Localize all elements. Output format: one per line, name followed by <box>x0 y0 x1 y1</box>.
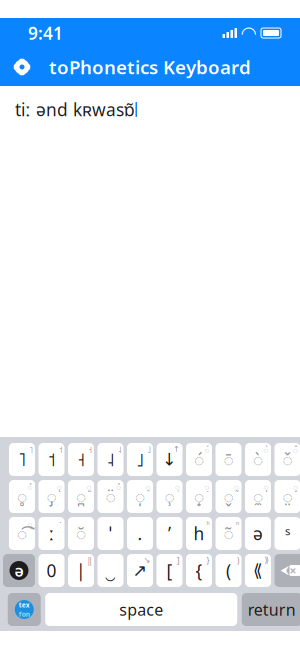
staticText: ˑ <box>59 518 62 529</box>
staticText: ◌́ <box>194 448 204 471</box>
staticText: ̽ <box>116 481 121 492</box>
button[interactable]: { <box>186 554 212 587</box>
button[interactable]: Next keyboard <box>8 593 41 626</box>
staticText: ˩ <box>136 448 143 471</box>
staticText: ◌̄ <box>223 448 233 471</box>
button[interactable]: 0 <box>38 554 64 587</box>
staticText: ˧ <box>77 448 84 471</box>
staticText: ʼ <box>168 522 171 545</box>
staticText: ̺ <box>86 481 91 492</box>
staticText: ˢ <box>285 522 290 545</box>
staticText: ◌̃ <box>223 522 233 545</box>
button[interactable]: Delete <box>274 554 300 587</box>
button[interactable]: Diacritic <box>97 480 123 513</box>
staticText: ◌̥ <box>17 485 27 508</box>
staticText: ̜ <box>175 481 180 492</box>
staticText: ː <box>48 522 54 545</box>
staticText: ◌̼ <box>253 485 263 508</box>
button[interactable]: . <box>127 517 153 550</box>
staticText: ↘ <box>143 555 150 565</box>
button[interactable]: Diacritic <box>68 480 94 513</box>
button[interactable]: Diacritic <box>38 480 64 513</box>
button[interactable]: ˈ <box>97 517 123 550</box>
button[interactable]: Diacritic <box>127 480 153 513</box>
button[interactable]: h <box>186 517 212 550</box>
button[interactable]: ↗ <box>127 554 153 587</box>
button[interactable]: Settings <box>0 48 44 86</box>
button[interactable]: Diacritic <box>245 480 271 513</box>
staticText: ˥ <box>29 444 32 455</box>
staticText: tiː ənd kʀwasɒ̃ <box>15 98 135 121</box>
button[interactable]: ə <box>245 517 271 550</box>
button[interactable]: Diacritic <box>245 443 271 476</box>
button[interactable]: Diacritic <box>215 480 241 513</box>
button[interactable]: ˦ <box>38 443 64 476</box>
staticText: ̀ <box>263 444 268 455</box>
staticText: space <box>119 599 163 620</box>
button[interactable]: ˢ <box>274 517 300 550</box>
staticText: { <box>195 559 202 582</box>
button[interactable]: ˨ <box>97 443 123 476</box>
staticText: fon <box>19 610 30 619</box>
staticText: ↑ <box>173 444 180 454</box>
staticText: ◌̆ <box>76 522 86 545</box>
staticText: ) <box>237 555 239 566</box>
button[interactable]: Diacritic <box>156 480 182 513</box>
button[interactable]: Diacritic <box>9 517 35 550</box>
staticText: ↓ <box>162 450 177 469</box>
button[interactable]: | <box>68 554 94 587</box>
button[interactable]: Diacritic <box>274 480 300 513</box>
staticText: ˦ <box>59 444 62 455</box>
staticText: ◌̡ <box>46 485 56 508</box>
button[interactable]: Shift <box>3 554 35 587</box>
button[interactable]: ↓ <box>156 443 182 476</box>
staticText: ◌̟ <box>194 485 204 508</box>
staticText: ̂ <box>293 444 298 455</box>
button[interactable]: ˩ <box>127 443 153 476</box>
staticText: ⁿ <box>236 518 239 529</box>
staticText: ͓ <box>263 481 268 492</box>
button[interactable]: Diacritic <box>274 443 300 476</box>
staticText: . <box>137 522 142 545</box>
staticText: 9:41 <box>28 21 63 44</box>
button[interactable]: Diacritic <box>9 480 35 513</box>
button[interactable]: Diacritic <box>186 443 212 476</box>
staticText: return <box>248 599 296 620</box>
staticText: ‿ <box>105 559 116 582</box>
button[interactable]: return <box>242 593 300 626</box>
staticText: ʰ <box>206 518 209 529</box>
staticText: ◌̩ <box>135 485 145 508</box>
button[interactable]: ː <box>38 517 64 550</box>
staticText: × <box>289 562 296 578</box>
staticText: ◠ <box>241 22 255 44</box>
button[interactable]: Diacritic <box>215 443 241 476</box>
staticText: ̢ <box>57 481 62 492</box>
staticText: ˧ <box>88 444 91 455</box>
staticText: ˦ <box>48 448 55 471</box>
button[interactable]: ( <box>215 554 241 587</box>
staticText: ◌̹ <box>164 485 174 508</box>
staticText: ◌̬ <box>223 485 233 508</box>
staticText: ◌̀ <box>253 448 263 471</box>
staticText: ] <box>177 555 180 566</box>
button[interactable]: space <box>45 593 237 626</box>
staticText: ˩ <box>147 444 150 455</box>
button[interactable]: Diacritic <box>215 517 241 550</box>
staticText: ̠ <box>204 481 209 492</box>
button[interactable]: ˧ <box>68 443 94 476</box>
button[interactable]: ⟪ <box>245 554 271 587</box>
button[interactable]: Diacritic <box>68 517 94 550</box>
button[interactable]: [ <box>156 554 182 587</box>
staticText: ə <box>14 560 23 581</box>
staticText: ⮜ <box>280 565 289 576</box>
staticText: [ <box>166 559 172 582</box>
staticText: tex <box>19 600 30 609</box>
staticText: ˨ <box>107 448 114 471</box>
button[interactable]: Diacritic <box>186 480 212 513</box>
button[interactable]: ˥ <box>9 443 35 476</box>
button[interactable]: ʼ <box>156 517 182 550</box>
button[interactable]: ‿ <box>97 554 123 587</box>
staticText: | <box>76 559 86 582</box>
staticText: ̰ <box>234 481 239 492</box>
staticText: ◌̪ <box>76 485 86 508</box>
